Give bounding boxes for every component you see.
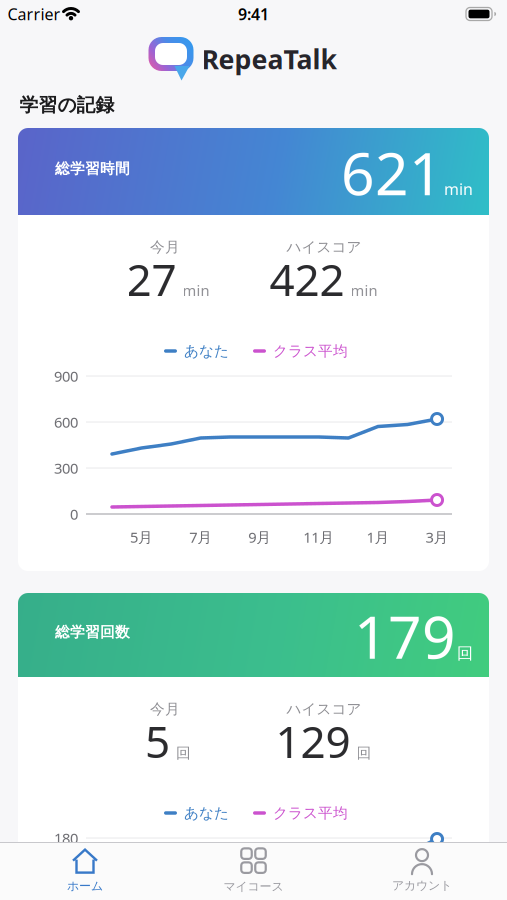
staticText: クラス平均 [273,804,348,822]
button[interactable]: ホーム [5,843,165,899]
staticText: 180 [54,828,78,848]
staticText: min [350,281,377,300]
staticText: ホーム [67,879,103,893]
staticText: 学習の記録 [19,93,114,116]
staticText: Carrier [7,3,60,25]
staticText: 回 [457,644,473,663]
staticText: 5 [145,712,170,770]
staticText: 0 [70,504,78,524]
staticText: 3月 [426,527,449,547]
staticText: アカウント [392,878,452,893]
staticText: min [182,281,209,300]
staticText: マイコース [223,879,283,894]
staticText: 1月 [366,527,389,547]
staticText: ハイスコア [286,238,361,256]
staticText: 120 [54,874,78,894]
staticText: 今月 [150,238,180,256]
staticText: 179 [354,597,456,675]
staticText: 9:41 [238,3,269,25]
staticText: 600 [54,412,78,432]
staticText: ハイスコア [286,700,361,718]
staticText: 422 [269,250,344,308]
staticText: 総学習回数 [55,623,130,641]
button[interactable]: アカウント [342,843,502,899]
staticText: 今月 [150,700,180,718]
staticText: 27 [126,250,176,308]
staticText: あなた [184,342,229,360]
staticText: 回 [176,744,191,762]
staticText: RepeaTalk [201,41,337,77]
staticText: あなた [184,804,229,822]
staticText: 11月 [303,527,334,547]
staticText: 621 [341,133,443,211]
staticText: 7月 [189,527,212,547]
staticText: 129 [275,712,350,770]
staticText: 5月 [130,527,153,547]
staticText: 回 [356,744,371,762]
button[interactable]: マイコース [173,843,333,899]
staticText: 900 [54,366,78,386]
staticText: 300 [54,458,78,478]
staticText: min [444,178,473,200]
staticText: 総学習時間 [55,159,130,177]
staticText: クラス平均 [273,342,348,360]
staticText: 9月 [248,527,271,547]
